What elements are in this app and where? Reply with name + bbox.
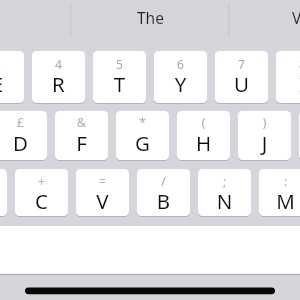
staticText: R bbox=[32, 70, 85, 100]
staticText: = bbox=[76, 173, 129, 189]
staticText: 4 bbox=[32, 56, 85, 72]
staticText: Vera bbox=[292, 7, 300, 28]
staticText: U bbox=[215, 70, 268, 100]
staticText: The bbox=[137, 7, 164, 28]
staticText: X bbox=[0, 187, 7, 217]
staticText: ) bbox=[238, 114, 291, 130]
button[interactable]: * bbox=[116, 111, 169, 160]
staticText: N bbox=[198, 187, 251, 217]
button[interactable]: 3 bbox=[0, 51, 24, 103]
staticText: D bbox=[0, 129, 47, 159]
staticText: / bbox=[137, 173, 190, 189]
button[interactable]: & bbox=[55, 111, 108, 160]
staticText: T bbox=[93, 70, 146, 100]
staticText: + bbox=[15, 173, 68, 189]
button[interactable]: : bbox=[259, 169, 300, 216]
button[interactable]: = bbox=[76, 169, 129, 216]
staticText: V bbox=[76, 187, 129, 217]
staticText: 6 bbox=[154, 56, 207, 72]
staticText: * bbox=[116, 114, 169, 130]
button[interactable]: 6 bbox=[154, 51, 207, 103]
button[interactable]: 7 bbox=[215, 51, 268, 103]
staticText: 5 bbox=[93, 56, 146, 72]
button[interactable]: ) bbox=[238, 111, 291, 160]
staticText: E bbox=[0, 70, 24, 100]
staticText: H bbox=[177, 129, 230, 159]
staticText: Y bbox=[154, 70, 207, 100]
staticText: F bbox=[55, 129, 108, 159]
staticText: G bbox=[116, 129, 169, 159]
button[interactable]: ( bbox=[177, 111, 230, 160]
staticText: M bbox=[259, 187, 300, 217]
button[interactable]: 8 bbox=[276, 51, 300, 103]
button[interactable]: The bbox=[71, 0, 229, 42]
staticText: K bbox=[299, 129, 300, 159]
staticText: ; bbox=[198, 173, 251, 189]
button[interactable]: - bbox=[0, 169, 7, 216]
button[interactable]: + bbox=[15, 169, 68, 216]
staticText: & bbox=[55, 114, 108, 130]
staticText: J bbox=[238, 129, 291, 159]
button[interactable]: 4 bbox=[32, 51, 85, 103]
button[interactable]: Vera bbox=[229, 0, 300, 42]
button[interactable]: 5 bbox=[93, 51, 146, 103]
button[interactable]: " bbox=[299, 111, 300, 160]
staticText: ( bbox=[177, 114, 230, 130]
staticText: : bbox=[259, 173, 300, 189]
staticText: C bbox=[15, 187, 68, 217]
staticText: 7 bbox=[215, 56, 268, 72]
staticText: B bbox=[137, 187, 190, 217]
staticText: £ bbox=[0, 114, 47, 130]
button[interactable]: / bbox=[137, 169, 190, 216]
button[interactable]: £ bbox=[0, 111, 47, 160]
button[interactable]: ; bbox=[198, 169, 251, 216]
